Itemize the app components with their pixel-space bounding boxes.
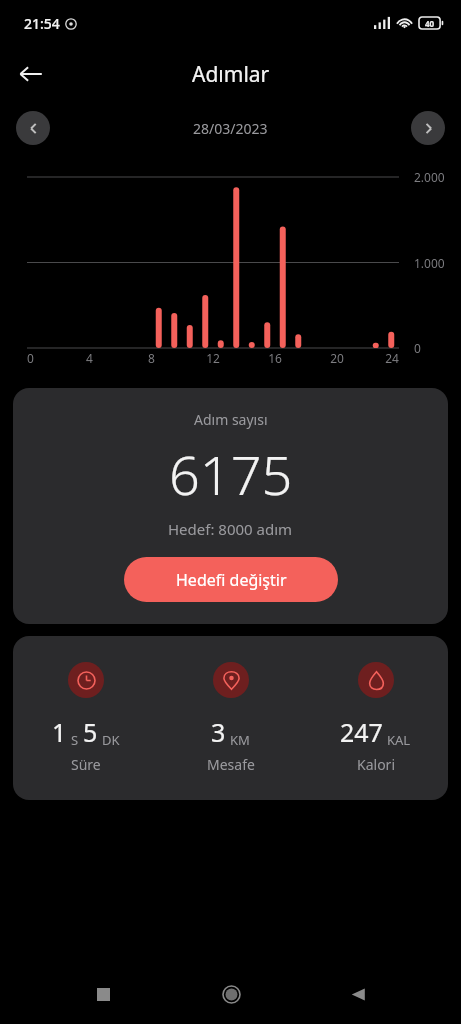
button[interactable]: Next day [411,111,445,145]
staticText: 0 [27,350,34,366]
button[interactable]: Home [207,970,255,1018]
staticText: 6175 [169,437,293,511]
button[interactable]: Back [8,51,54,97]
staticText: Mesafe [207,755,255,774]
staticText: S [71,731,79,749]
button[interactable]: Adım sayısı [13,388,448,624]
staticText: 40 [425,18,435,29]
button[interactable]: Recents [79,970,127,1018]
staticText: 4 [86,350,93,366]
staticText: Kalori [357,755,395,774]
staticText: 16 [268,350,282,366]
staticText: Adımlar [192,60,270,89]
button[interactable]: Hedefi değiştir [124,557,338,602]
staticText: 28/03/2023 [193,119,268,138]
staticText: 247 [340,715,383,749]
staticText: 8 [148,350,155,366]
staticText: Hedef: 8000 adım [168,519,293,539]
staticText: 5 [83,715,98,749]
button[interactable]: 1 [13,662,158,774]
staticText: Hedefi değiştir [176,569,287,591]
staticText: DK [102,731,120,749]
button[interactable]: Previous day [16,111,50,145]
staticText: 1 [52,715,67,749]
staticText: Süre [71,755,101,774]
staticText: 20 [330,350,344,366]
button[interactable]: 3 [158,662,303,774]
button[interactable]: 1 [13,636,448,800]
staticText: KAL [387,731,411,749]
staticText: 0 [414,340,421,356]
staticText: 24 [385,350,399,366]
staticText: 3 [211,715,226,749]
button[interactable]: Back [334,970,382,1018]
staticText: 1.000 [414,255,445,271]
button[interactable]: 247 [303,662,448,774]
staticText: KM [230,731,250,749]
staticText: 2.000 [414,169,445,185]
staticText: Adım sayısı [194,410,268,429]
staticText: 12 [206,350,220,366]
staticText: 21:54 [24,14,60,33]
